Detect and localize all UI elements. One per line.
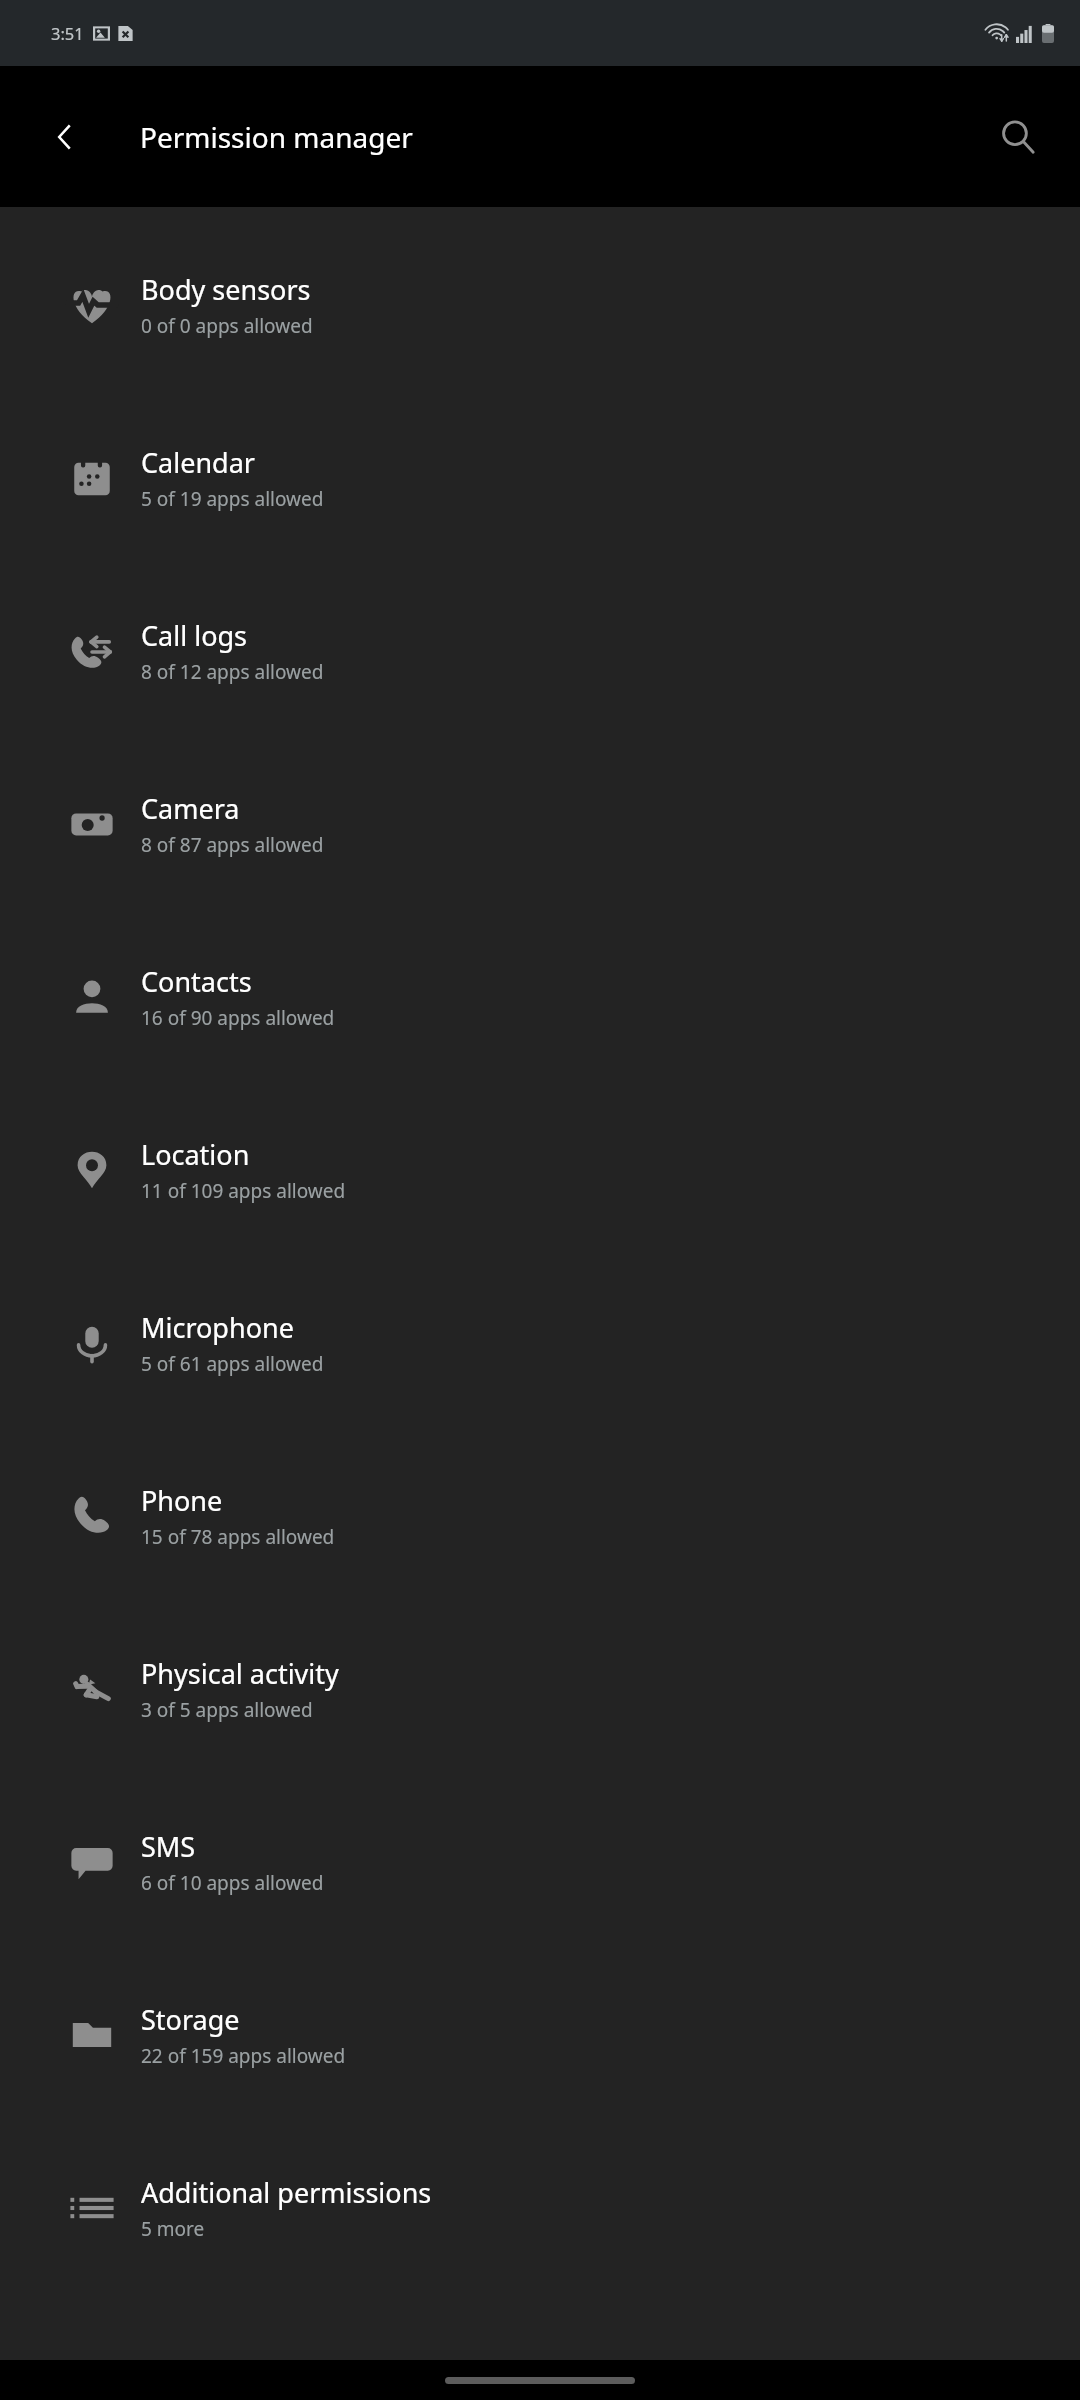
staticText: Contacts bbox=[141, 963, 252, 1000]
button[interactable]: Microphone bbox=[0, 1256, 1080, 1429]
staticText: Storage bbox=[141, 2001, 240, 2038]
staticText: Microphone bbox=[141, 1309, 294, 1346]
staticText: 8 of 12 apps allowed bbox=[141, 659, 324, 685]
staticText: Permission manager bbox=[140, 118, 413, 156]
button[interactable]: Back bbox=[30, 102, 100, 172]
button[interactable]: Additional permissions bbox=[0, 2121, 1080, 2294]
staticText: 0 of 0 apps allowed bbox=[141, 313, 313, 339]
button[interactable]: SMS bbox=[0, 1775, 1080, 1948]
staticText: 5 of 61 apps allowed bbox=[141, 1351, 324, 1377]
staticText: Physical activity bbox=[141, 1655, 339, 1692]
staticText: Body sensors bbox=[141, 271, 311, 308]
staticText: Call logs bbox=[141, 617, 248, 654]
button[interactable]: Search bbox=[982, 101, 1054, 173]
button[interactable]: Physical activity bbox=[0, 1602, 1080, 1775]
staticText: 22 of 159 apps allowed bbox=[141, 2043, 346, 2069]
staticText: Camera bbox=[141, 790, 240, 827]
staticText: 5 more bbox=[141, 2216, 205, 2242]
button[interactable]: Calendar bbox=[0, 391, 1080, 564]
button[interactable]: Contacts bbox=[0, 910, 1080, 1083]
staticText: 16 of 90 apps allowed bbox=[141, 1005, 335, 1031]
staticText: 11 of 109 apps allowed bbox=[141, 1178, 346, 1204]
staticText: 3 of 5 apps allowed bbox=[141, 1697, 313, 1723]
staticText: Additional permissions bbox=[141, 2174, 432, 2211]
staticText: 3:51 bbox=[51, 22, 84, 44]
button[interactable]: Phone bbox=[0, 1429, 1080, 1602]
staticText: 5 of 19 apps allowed bbox=[141, 486, 324, 512]
staticText: SMS bbox=[141, 1828, 196, 1865]
button[interactable]: Call logs bbox=[0, 564, 1080, 737]
button[interactable]: Location bbox=[0, 1083, 1080, 1256]
button[interactable]: Camera bbox=[0, 737, 1080, 910]
staticText: Calendar bbox=[141, 444, 255, 481]
staticText: 15 of 78 apps allowed bbox=[141, 1524, 335, 1550]
staticText: Location bbox=[141, 1136, 250, 1173]
staticText: 6 of 10 apps allowed bbox=[141, 1870, 324, 1896]
staticText: Phone bbox=[141, 1482, 223, 1519]
button[interactable]: Storage bbox=[0, 1948, 1080, 2121]
button[interactable]: Body sensors bbox=[0, 218, 1080, 391]
staticText: 8 of 87 apps allowed bbox=[141, 832, 324, 858]
